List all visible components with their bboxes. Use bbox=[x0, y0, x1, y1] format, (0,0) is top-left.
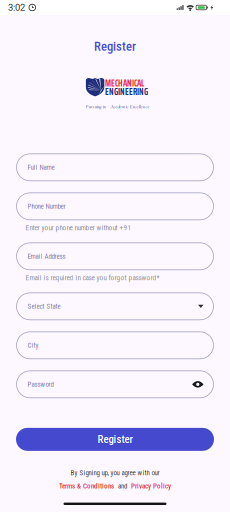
staticText: Phone Number bbox=[27, 202, 65, 210]
staticText: Pursuing in Acedemic Excellence bbox=[86, 103, 150, 110]
staticText: City bbox=[27, 341, 38, 349]
staticText: Enter your phone number without +91 bbox=[25, 224, 131, 232]
staticText: Full Name bbox=[27, 163, 54, 171]
staticText: By Signing up, you agree with our bbox=[70, 469, 159, 477]
staticText: and bbox=[114, 482, 131, 490]
button[interactable]: Phone Number bbox=[16, 193, 213, 220]
button[interactable]: Email Address bbox=[16, 243, 213, 270]
staticText: ENGINEERING bbox=[105, 85, 148, 99]
button[interactable]: Full Name bbox=[16, 154, 213, 181]
staticText: MECHANICAL bbox=[105, 77, 144, 90]
staticText: Register bbox=[97, 433, 132, 446]
button[interactable]: Select State bbox=[16, 293, 213, 320]
staticText: Select State bbox=[27, 302, 60, 310]
staticText: 3:02 bbox=[8, 2, 25, 13]
staticText: Email Address bbox=[27, 252, 65, 260]
button[interactable]: Register bbox=[16, 428, 214, 451]
button[interactable]: Terms & Conditions bbox=[59, 482, 114, 490]
staticText: Register bbox=[94, 39, 136, 54]
staticText: Terms & Conditions bbox=[59, 482, 114, 490]
button[interactable]: City bbox=[16, 332, 213, 359]
button[interactable]: Password bbox=[16, 371, 213, 398]
staticText: Privacy Policy bbox=[131, 482, 171, 490]
staticText: Password bbox=[27, 380, 53, 388]
staticText: Email is required in case you forgot pas… bbox=[25, 274, 159, 282]
button[interactable]: Privacy Policy bbox=[131, 482, 171, 490]
